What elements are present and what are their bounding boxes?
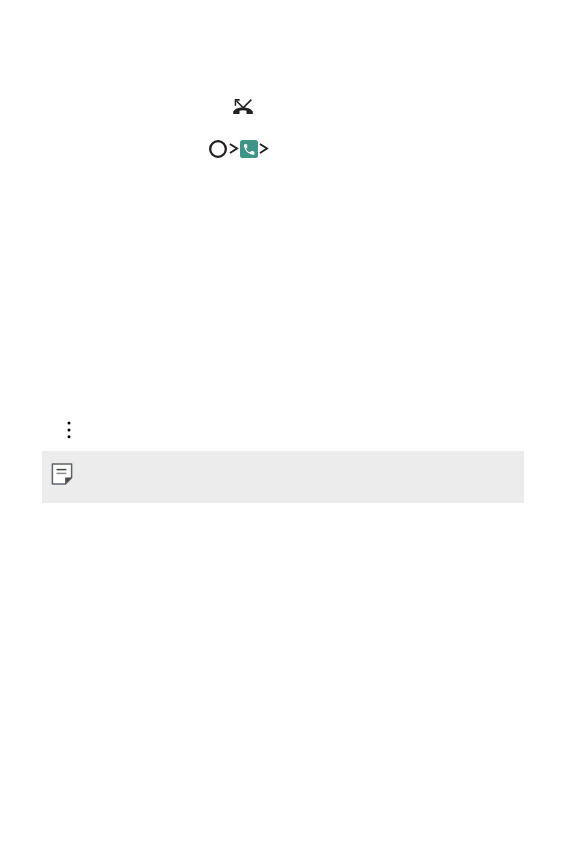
- button[interactable]: Home: [209, 140, 227, 158]
- button[interactable]: Note row: [42, 451, 524, 503]
- other: Missed call: [233, 99, 253, 114]
- button[interactable]: Phone call: [240, 140, 258, 158]
- button[interactable]: More options: [57, 412, 81, 446]
